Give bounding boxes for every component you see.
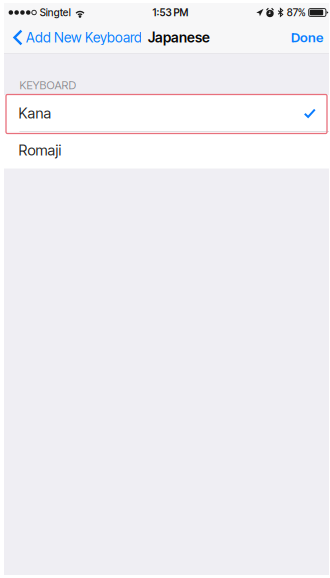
staticText: Japanese [148,29,210,46]
staticText: Singtel [40,6,71,19]
button[interactable]: Add New Keyboard [4,22,146,53]
staticText: KEYBOARD [19,78,76,92]
staticText: 1:53 PM [153,6,189,19]
button[interactable]: Romaji [4,132,329,168]
staticText: Romaji [18,141,61,159]
staticText: Add New Keyboard [26,29,142,46]
staticText: 87% [287,6,306,19]
button[interactable]: Done [283,22,329,53]
staticText: Done [291,29,323,45]
button[interactable]: Kana [4,95,329,131]
staticText: Kana [18,104,51,122]
